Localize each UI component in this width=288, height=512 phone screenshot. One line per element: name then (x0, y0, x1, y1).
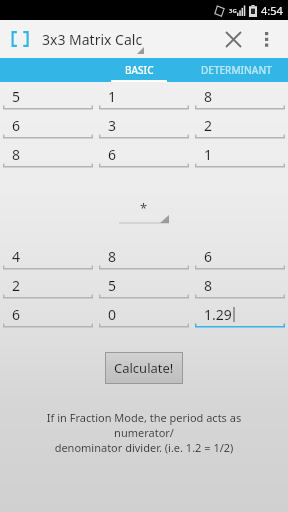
button[interactable]: 6 (3, 115, 93, 139)
button[interactable]: 3 (99, 115, 189, 139)
button[interactable]: 3x3 Matrix Calc (42, 20, 214, 58)
staticText: 1 (204, 145, 213, 164)
staticText: BASIC (125, 63, 154, 77)
button[interactable]: 8 (195, 275, 285, 299)
button[interactable]: DETERMINANT (184, 58, 288, 82)
staticText: 6 (108, 145, 117, 164)
staticText: 6 (204, 247, 213, 266)
staticText: DETERMINANT (201, 63, 272, 77)
button[interactable]: 1 (99, 86, 189, 110)
staticText: 8 (108, 247, 117, 266)
button[interactable]: 0 (99, 304, 189, 328)
button[interactable]: 6 (99, 144, 189, 168)
button[interactable]: 1.29 (195, 304, 285, 328)
staticText: 5 (108, 276, 117, 295)
button[interactable]: 6 (3, 304, 93, 328)
staticText: Calculate! (114, 359, 174, 377)
button[interactable]: 1 (195, 144, 285, 168)
staticText: * (140, 199, 148, 217)
button[interactable]: Operator (119, 198, 169, 224)
button[interactable]: BASIC (94, 58, 184, 82)
staticText: 0 (108, 305, 117, 324)
staticText: 8 (204, 276, 213, 295)
button[interactable]: 2 (195, 115, 285, 139)
staticText: 2 (204, 116, 213, 135)
staticText: 8 (204, 87, 213, 106)
button[interactable]: 8 (99, 246, 189, 270)
button[interactable]: More options (252, 24, 282, 54)
staticText: 6 (12, 116, 21, 135)
button[interactable]: Close (214, 20, 252, 58)
staticText: 6 (12, 305, 21, 324)
staticText: 5 (12, 87, 21, 106)
button[interactable]: 2 (3, 275, 93, 299)
staticText: 3 (108, 116, 117, 135)
button[interactable]: 8 (3, 144, 93, 168)
button[interactable]: 4 (3, 246, 93, 270)
staticText: If in Fraction Mode, the period acts as … (16, 410, 272, 455)
staticText: 1.29 (204, 305, 232, 324)
staticText: 3G (229, 7, 237, 15)
button[interactable]: 8 (195, 86, 285, 110)
staticText: 1 (108, 87, 117, 106)
button[interactable]: 5 (99, 275, 189, 299)
button[interactable]: Calculate! (106, 353, 182, 383)
staticText: 2 (12, 276, 21, 295)
staticText: 8 (12, 145, 21, 164)
staticText: 4:54 (261, 3, 283, 18)
staticText: 4 (12, 247, 21, 266)
staticText: 3x3 Matrix Calc (42, 30, 143, 49)
button[interactable]: 5 (3, 86, 93, 110)
button[interactable]: 6 (195, 246, 285, 270)
